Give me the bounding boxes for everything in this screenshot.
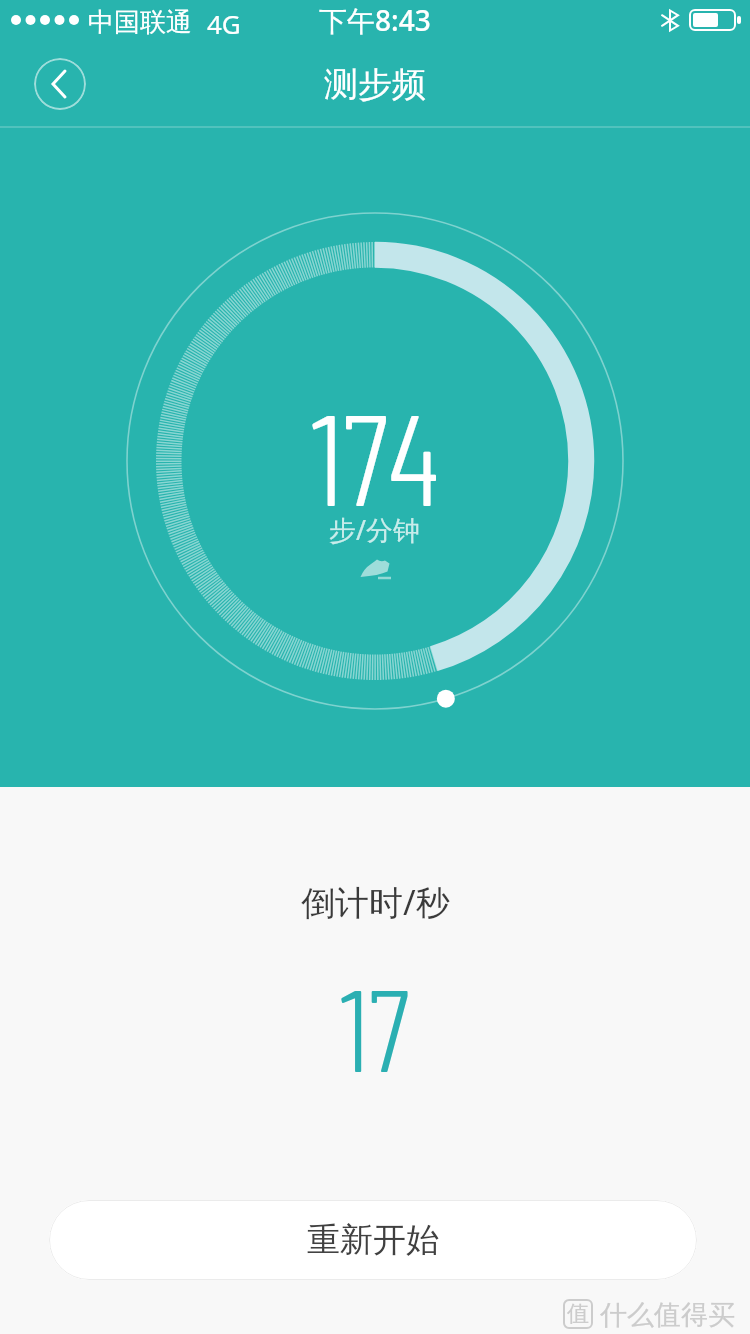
- button[interactable]: 重新开始: [49, 1200, 697, 1280]
- staticText: 174: [311, 378, 440, 532]
- staticText: 下午8:43: [319, 1, 431, 39]
- button[interactable]: [34, 58, 86, 110]
- staticText: 倒计时/秒: [301, 879, 450, 925]
- staticText: 值: [567, 1300, 589, 1328]
- staticText: 什么值得买: [593, 1295, 736, 1332]
- staticText: 重新开始: [307, 1219, 439, 1261]
- staticText: 测步频: [324, 63, 426, 106]
- staticText: 4G: [207, 6, 241, 41]
- staticText: 步/分钟: [329, 511, 421, 548]
- staticText: 17: [340, 957, 410, 1095]
- staticText: 中国联通: [88, 6, 192, 39]
